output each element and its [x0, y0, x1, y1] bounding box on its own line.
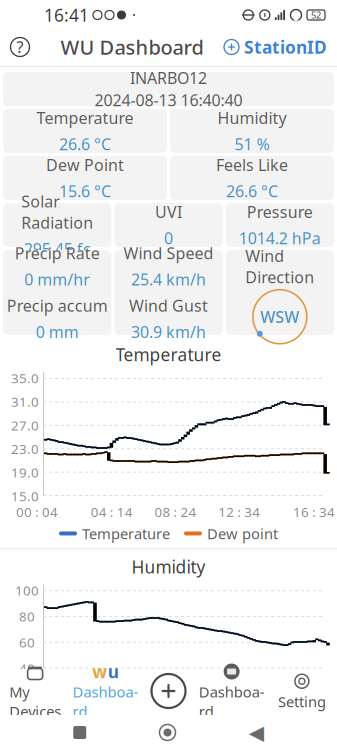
staticText: Solar Radiation	[21, 191, 93, 233]
staticText: u	[108, 660, 119, 683]
staticText: Temperature	[115, 343, 221, 366]
staticText: 51 %	[234, 133, 269, 155]
button[interactable]: Setting	[267, 672, 337, 712]
staticText: 25.4 km/h	[131, 269, 206, 290]
staticText: 08 : 24	[154, 503, 196, 521]
staticText: Humidity	[131, 555, 205, 578]
staticText: WU Dashboard	[60, 34, 203, 60]
staticText: 52	[311, 9, 321, 21]
staticText: Wind Direction	[245, 245, 314, 288]
staticText: 12 : 34	[218, 503, 260, 521]
staticText: INARBO12	[130, 67, 207, 88]
staticText: Precip accum	[7, 295, 108, 316]
staticText: 15.0	[11, 487, 39, 505]
staticText: Humidity	[217, 107, 286, 128]
staticText: 0 mm/hr	[24, 269, 90, 290]
staticText: 100	[15, 581, 39, 599]
staticText: w	[92, 660, 107, 683]
button[interactable]: Help	[0, 30, 40, 64]
staticText: 295.45 fc	[24, 238, 91, 259]
staticText: 16:41	[44, 3, 89, 26]
staticText: 30.9 km/h	[131, 321, 206, 342]
staticText: 31.0	[11, 393, 39, 410]
button[interactable]: StationID	[224, 30, 337, 64]
staticText: 35.0	[11, 369, 39, 387]
staticText: Feels Like	[216, 154, 288, 175]
staticText: Dew point	[207, 524, 278, 543]
staticText: Wind Gust	[129, 295, 208, 316]
staticText: Temperature	[36, 107, 133, 128]
staticText: My Devices	[9, 682, 61, 721]
staticText: WSW	[260, 306, 299, 327]
staticText: 23.0	[11, 440, 39, 458]
staticText: 27.0	[11, 416, 39, 434]
button[interactable]: Add	[146, 669, 190, 713]
staticText: 0	[164, 227, 173, 249]
button[interactable]: My Devices	[0, 672, 70, 712]
staticText: Dashboard	[199, 682, 265, 721]
staticText: 80	[19, 607, 35, 625]
staticText: Precip Rate	[15, 242, 100, 264]
staticText: 26.6 °C	[59, 133, 111, 155]
staticText: Temperature	[82, 524, 170, 543]
staticText: 2024-08-13 16:40:40	[94, 89, 242, 111]
staticText: 60	[19, 633, 35, 651]
staticText: Dashboard	[72, 682, 138, 721]
staticText: 40	[19, 659, 35, 677]
staticText: 1014.2 hPa	[239, 227, 321, 249]
staticText: Setting	[278, 692, 326, 711]
staticText: Wind Speed	[123, 242, 213, 264]
staticText: StationID	[244, 35, 327, 58]
staticText: Dew Point	[46, 154, 124, 175]
staticText: 26.6 °C	[226, 180, 278, 202]
staticText: 0 mm	[36, 321, 79, 342]
staticText: 20	[19, 685, 35, 703]
staticText: UVI	[155, 201, 182, 222]
staticText: ◀	[249, 721, 264, 744]
staticText: 04 : 14	[91, 503, 133, 521]
button[interactable]: w	[70, 672, 140, 712]
staticText: 16 : 34	[293, 503, 335, 521]
staticText: 00 : 04	[16, 503, 58, 521]
staticText: ?	[16, 36, 23, 58]
button[interactable]: Dashboard	[196, 672, 267, 712]
staticText: 19.0	[11, 464, 39, 481]
staticText: Pressure	[247, 201, 313, 222]
staticText: 15.6 °C	[59, 180, 111, 202]
